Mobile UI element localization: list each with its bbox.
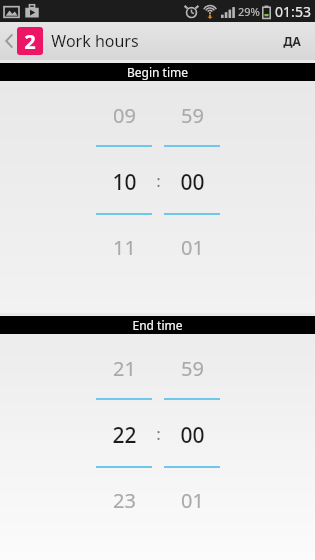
staticText: 01 <box>181 487 204 511</box>
staticText: 59 <box>181 102 204 126</box>
button[interactable]: Back <box>0 25 149 57</box>
staticText: : <box>156 169 161 192</box>
staticText: 59 <box>181 355 204 379</box>
button[interactable]: 22 <box>96 421 152 445</box>
button[interactable]: 21 <box>96 355 152 379</box>
button[interactable]: 09 <box>96 102 152 126</box>
staticText: 00 <box>180 168 205 192</box>
button[interactable]: ДА <box>269 25 315 57</box>
staticText: 09 <box>113 102 136 126</box>
button[interactable]: 00 <box>164 421 220 445</box>
other: Back <box>4 32 15 50</box>
staticText: 10 <box>112 168 137 192</box>
staticText: 23 <box>113 487 136 511</box>
staticText: 2 <box>24 28 36 55</box>
staticText: 01:53 <box>275 2 311 21</box>
staticText: 22 <box>112 421 137 445</box>
button[interactable]: 01 <box>164 487 220 511</box>
staticText: : <box>156 422 161 445</box>
button[interactable]: 01 <box>164 234 220 258</box>
staticText: 21 <box>113 355 136 379</box>
button[interactable]: 10 <box>96 168 152 192</box>
button[interactable]: 59 <box>164 102 220 126</box>
staticText: 00 <box>180 421 205 445</box>
staticText: ДА <box>283 33 301 49</box>
button[interactable]: 00 <box>164 168 220 192</box>
staticText: 29% <box>238 4 260 19</box>
staticText: Begin time <box>127 64 188 80</box>
staticText: End time <box>132 317 183 333</box>
staticText: 01 <box>181 234 204 258</box>
button[interactable]: 11 <box>96 234 152 258</box>
staticText: Work hours <box>51 30 139 52</box>
button[interactable]: 59 <box>164 355 220 379</box>
button[interactable]: 23 <box>96 487 152 511</box>
staticText: 11 <box>113 234 136 258</box>
